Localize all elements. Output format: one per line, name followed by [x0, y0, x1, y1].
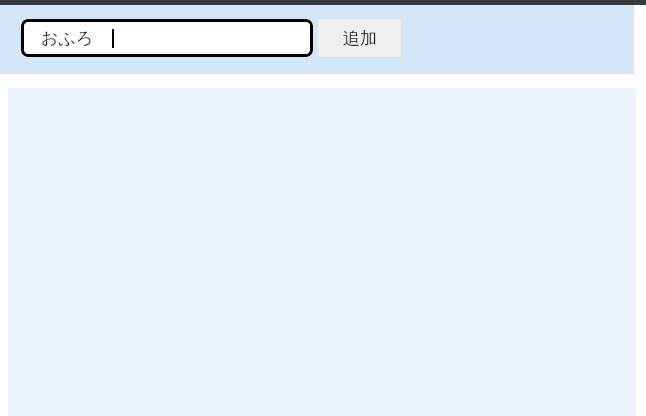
button[interactable]: 追加 [318, 19, 401, 57]
staticText: 追加 [343, 28, 377, 49]
button[interactable]: Task name input [21, 19, 313, 57]
staticText: おふろ [41, 28, 94, 49]
